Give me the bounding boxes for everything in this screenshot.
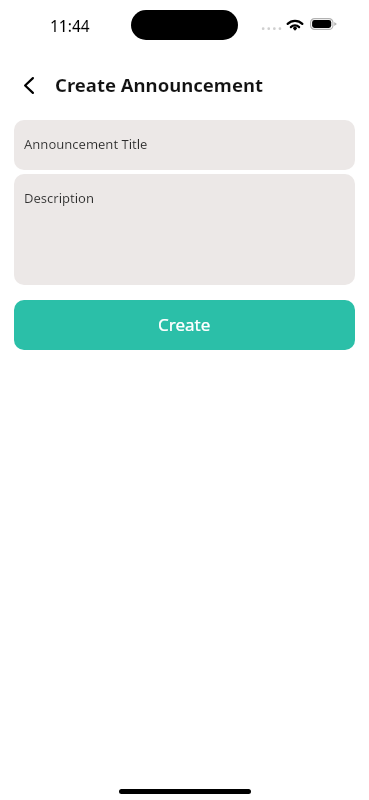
staticText: 11:44 — [50, 15, 90, 36]
button[interactable]: Create — [14, 300, 355, 350]
staticText: Create Announcement — [55, 72, 263, 97]
button[interactable]: Back — [9, 68, 49, 102]
button[interactable]: Description — [14, 174, 355, 285]
staticText: Announcement Title — [24, 135, 148, 153]
staticText: Description — [24, 189, 94, 207]
staticText: Create — [158, 313, 211, 336]
button[interactable]: Announcement Title — [14, 120, 355, 170]
